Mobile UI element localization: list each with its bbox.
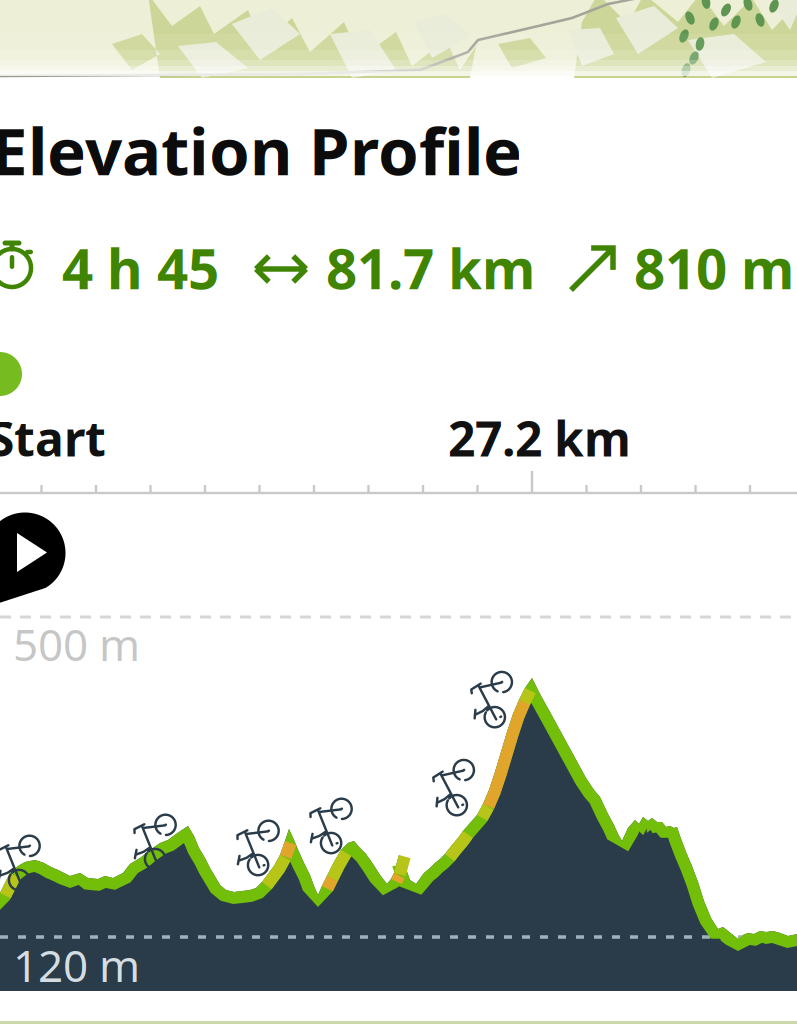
staticText: Elevation Profile [0, 107, 522, 193]
staticText: 120 m [13, 936, 140, 994]
staticText: 27.2 km [448, 406, 631, 470]
staticText: Start [0, 406, 106, 470]
staticText: 810 m [634, 232, 794, 304]
staticText: 500 m [13, 615, 140, 673]
staticText: 81.7 km [326, 232, 535, 304]
staticText: 4 h 45 [62, 232, 219, 304]
